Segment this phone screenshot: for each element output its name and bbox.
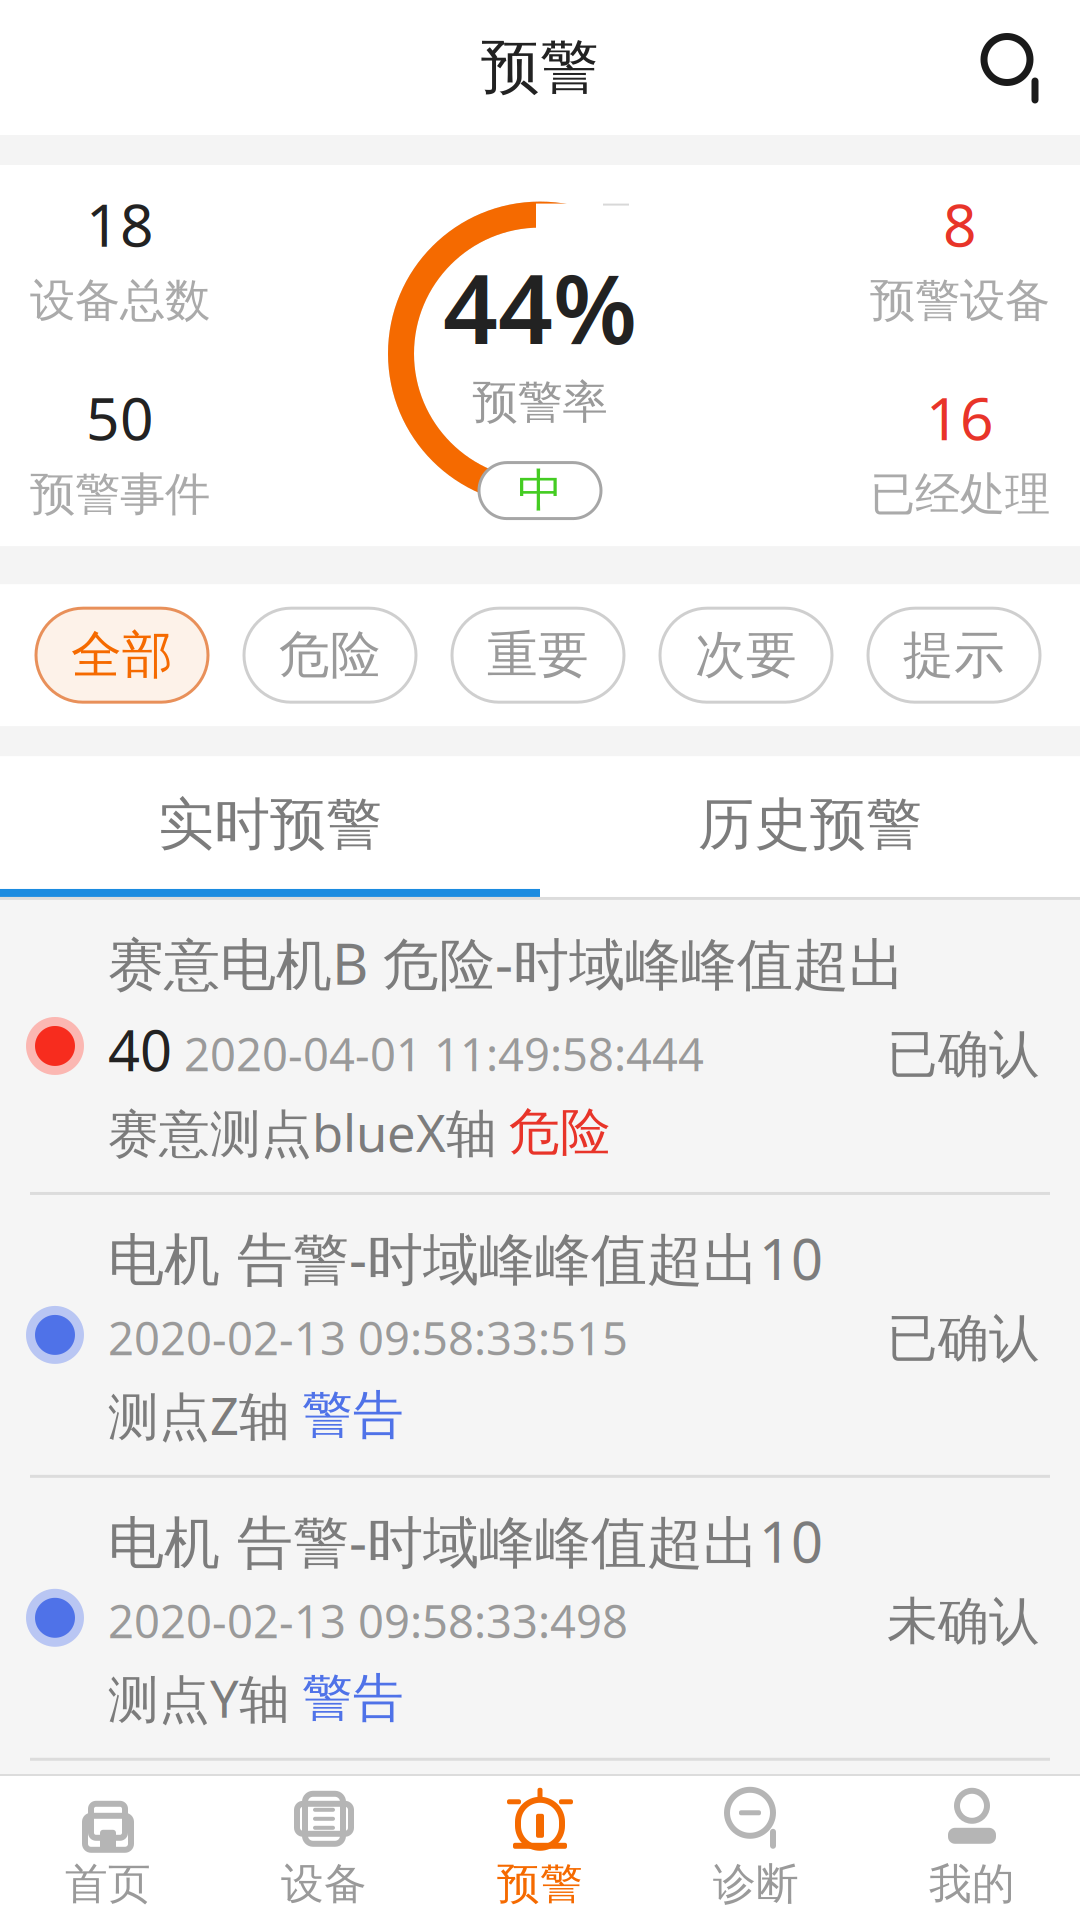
staticText: 已确认 [887,1023,1040,1085]
staticText: 44% [443,243,637,370]
button[interactable]: 设备 [216,1772,432,1920]
staticText: 未确认 [887,1873,1040,1920]
staticText: 提示 [903,624,1005,686]
staticText: 已经处理 [870,466,1050,522]
staticText: 实时预警 [158,790,382,859]
staticText: 未确认 [887,1590,1040,1652]
button[interactable]: 诊断 [648,1772,864,1920]
staticText: 次要 [695,624,797,686]
staticText: 危险 [279,624,381,686]
staticText: 预警 [497,1858,583,1910]
button[interactable]: 提示 [868,608,1040,702]
button[interactable]: 危险 [244,608,416,702]
staticText: 2020-02-13 09:58:33:515 [108,1308,628,1368]
staticText: 2020-04-01 11:49:58:444 [184,1023,704,1084]
button[interactable]: 全部 [36,608,208,702]
staticText: 赛意测点blueX轴 [108,1099,497,1166]
staticText: 50 [86,379,154,456]
button[interactable]: 历史预警 [540,756,1080,889]
staticText: 设备 [281,1858,367,1910]
button[interactable]: 次要 [660,608,832,702]
button[interactable]: 实时预警 [0,756,540,889]
button[interactable]: 预警 [432,1772,648,1920]
button[interactable]: 电机 告警-时域峰峰值超出10 [0,1195,1080,1475]
staticText: 我的 [929,1858,1015,1910]
staticText: 18 [86,185,154,263]
staticText: 赛意电机B 危险-时域峰峰值超出 [108,926,905,1000]
button[interactable]: 搜索 [980,32,1080,102]
staticText: 警告 [302,1667,404,1729]
staticText: 预警率 [472,374,607,430]
staticText: 历史预警 [698,790,922,859]
staticText: 测点Y轴 [108,1664,290,1732]
staticText: 危险 [509,1101,611,1163]
staticText: 测点Z轴 [108,1382,290,1449]
staticText: 2020-02-13 09:58:33:470 [108,1873,628,1920]
button[interactable]: 赛意电机B 危险-时域峰峰值超出 [0,900,1080,1192]
staticText: 16 [926,379,994,456]
staticText: 预警 [481,31,599,104]
staticText: 设备总数 [30,273,210,329]
staticText: 诊断 [713,1858,799,1910]
staticText: 已确认 [887,1307,1040,1369]
staticText: 电机 告警-时域峰峰值超出10 [108,1221,823,1295]
staticText: 40 [108,1012,172,1087]
button[interactable]: 重要 [452,608,624,702]
staticText: 全部 [71,624,173,686]
button[interactable]: 首页 [0,1772,216,1920]
staticText: 预警设备 [870,273,1050,329]
staticText: 电机 告警-时域峰峰值超出10 [108,1787,823,1861]
staticText: 2020-02-13 09:58:33:498 [108,1590,628,1651]
button[interactable]: 我的 [864,1772,1080,1920]
staticText: 警告 [302,1384,404,1446]
staticText: 预警事件 [30,466,210,522]
staticText: 中 [517,463,562,518]
staticText: 重要 [487,624,589,686]
button[interactable]: 电机 告警-时域峰峰值超出10 [0,1761,1080,1920]
staticText: 电机 告警-时域峰峰值超出10 [108,1504,823,1578]
staticText: 首页 [65,1858,151,1910]
button[interactable]: 电机 告警-时域峰峰值超出10 [0,1478,1080,1758]
staticText: 8 [943,185,977,263]
